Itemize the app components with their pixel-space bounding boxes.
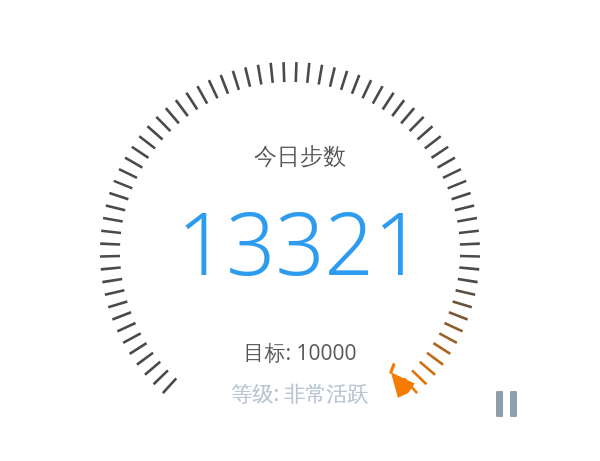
staticText: 目标: 10000: [243, 338, 357, 367]
staticText: 等级: 非常活跃: [231, 379, 369, 408]
button[interactable]: Pause: [484, 382, 528, 426]
staticText: 今日步数: [254, 142, 346, 171]
staticText: 13321: [177, 183, 423, 300]
